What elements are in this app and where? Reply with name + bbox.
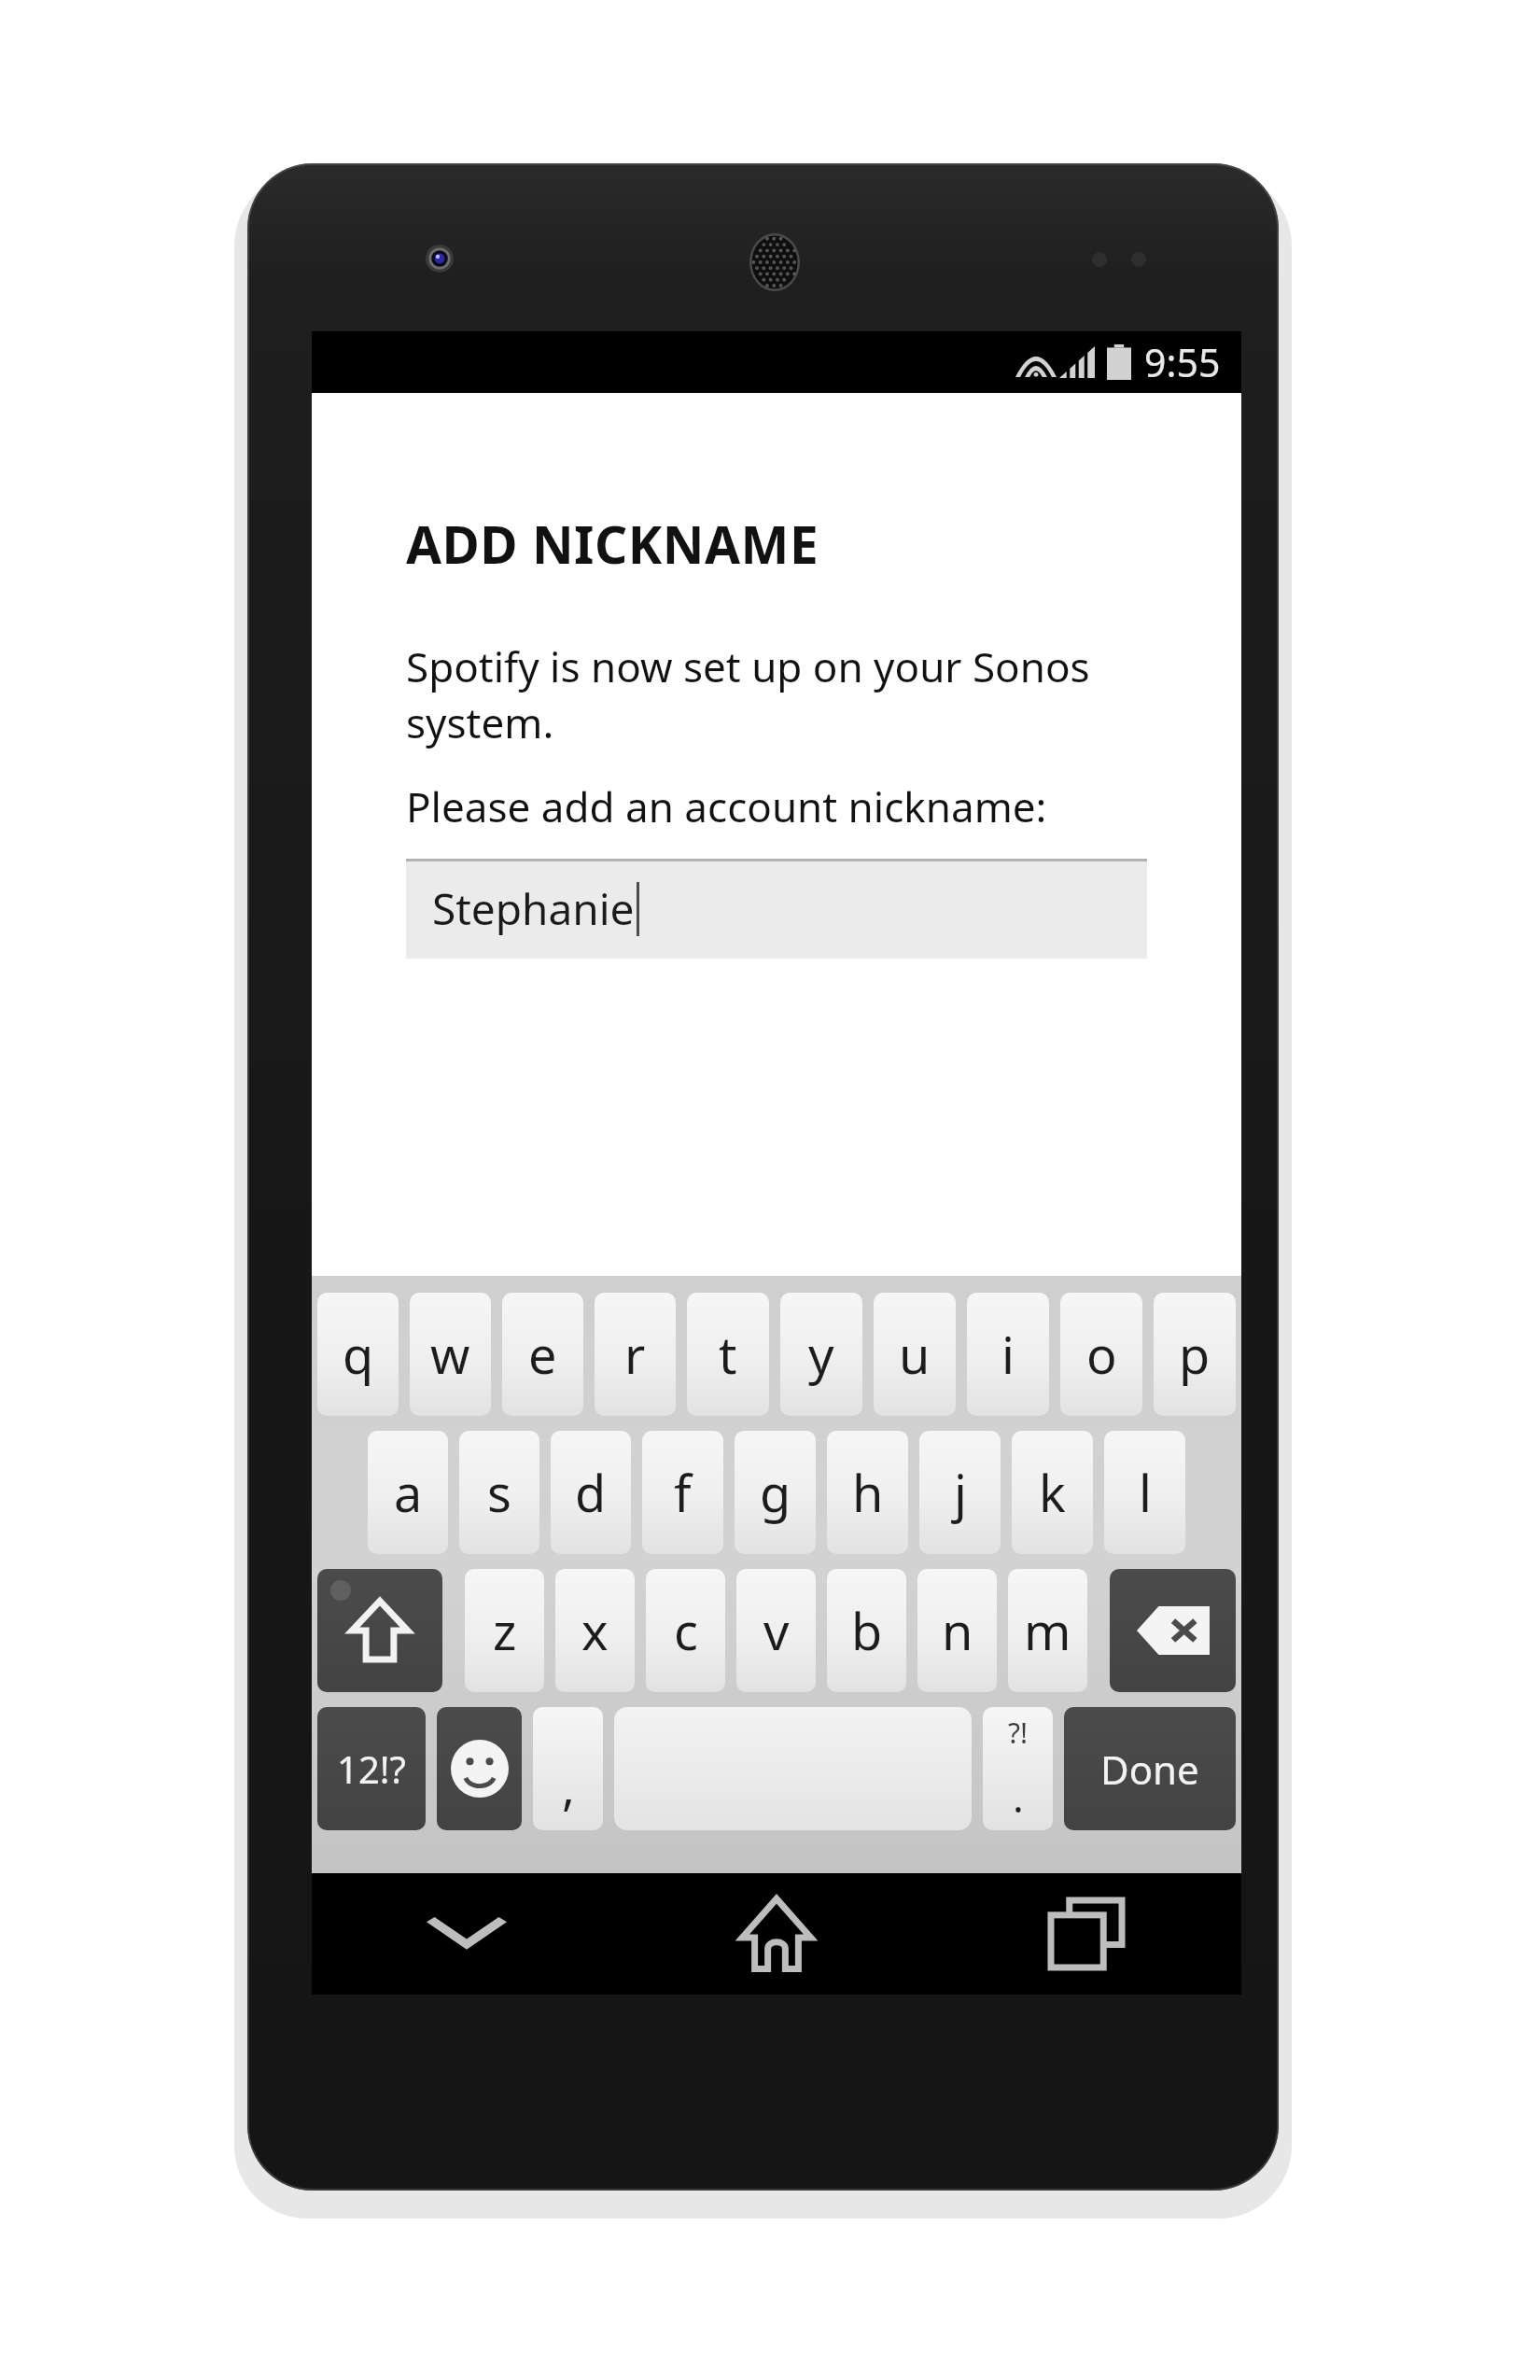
staticText: Done: [1100, 1743, 1199, 1796]
button[interactable]: Hide keyboard: [312, 1873, 622, 1995]
button[interactable]: 12!?: [317, 1707, 426, 1830]
staticText: Spotify is now set up on your Sonos syst…: [406, 638, 1147, 750]
button[interactable]: q: [317, 1293, 399, 1416]
staticText: k: [1039, 1458, 1066, 1527]
staticText: v: [763, 1596, 790, 1665]
button[interactable]: r: [595, 1293, 676, 1416]
button[interactable]: u: [874, 1293, 956, 1416]
staticText: r: [624, 1320, 646, 1389]
staticText: f: [674, 1458, 692, 1527]
staticText: t: [719, 1320, 737, 1389]
button[interactable]: Emoji: [437, 1707, 522, 1830]
button[interactable]: m: [1008, 1569, 1087, 1692]
button[interactable]: a: [368, 1431, 448, 1554]
button[interactable]: x: [555, 1569, 635, 1692]
staticText: .: [1013, 1769, 1024, 1825]
staticText: m: [1024, 1596, 1071, 1665]
staticText: b: [851, 1596, 883, 1665]
button[interactable]: k: [1012, 1431, 1093, 1554]
button[interactable]: Shift: [317, 1569, 442, 1692]
button[interactable]: t: [687, 1293, 769, 1416]
button[interactable]: o: [1060, 1293, 1142, 1416]
staticText: Stephanie: [432, 879, 635, 938]
staticText: ,: [562, 1753, 575, 1819]
button[interactable]: h: [827, 1431, 908, 1554]
staticText: 12!?: [337, 1743, 406, 1794]
staticText: u: [899, 1320, 931, 1389]
button[interactable]: z: [465, 1569, 544, 1692]
button[interactable]: i: [967, 1293, 1049, 1416]
staticText: a: [394, 1458, 423, 1527]
button[interactable]: Space: [614, 1707, 972, 1830]
staticText: s: [487, 1458, 511, 1527]
button[interactable]: v: [736, 1569, 816, 1692]
staticText: 9:55: [1144, 336, 1221, 388]
button[interactable]: l: [1104, 1431, 1185, 1554]
staticText: i: [1001, 1320, 1015, 1389]
staticText: e: [528, 1320, 557, 1389]
staticText: j: [954, 1458, 967, 1527]
button[interactable]: Stephanie: [406, 859, 1147, 959]
staticText: y: [808, 1320, 834, 1389]
button[interactable]: e: [502, 1293, 583, 1416]
button[interactable]: n: [917, 1569, 997, 1692]
button[interactable]: w: [410, 1293, 491, 1416]
staticText: q: [343, 1320, 374, 1389]
button[interactable]: s: [459, 1431, 539, 1554]
staticText: ?!: [1008, 1714, 1029, 1752]
button[interactable]: p: [1154, 1293, 1236, 1416]
button[interactable]: Home: [622, 1873, 931, 1995]
staticText: o: [1086, 1320, 1117, 1389]
staticText: w: [430, 1320, 470, 1389]
button[interactable]: j: [919, 1431, 1001, 1554]
button[interactable]: g: [735, 1431, 816, 1554]
button[interactable]: ?!: [983, 1707, 1053, 1830]
staticText: g: [760, 1458, 791, 1527]
staticText: n: [942, 1596, 973, 1665]
staticText: c: [674, 1596, 698, 1665]
staticText: p: [1179, 1320, 1211, 1389]
button[interactable]: Recents: [931, 1873, 1241, 1995]
button[interactable]: c: [646, 1569, 725, 1692]
staticText: x: [581, 1596, 609, 1665]
button[interactable]: b: [827, 1569, 906, 1692]
staticText: ADD NICKNAME: [406, 509, 819, 579]
staticText: z: [493, 1596, 517, 1665]
button[interactable]: y: [780, 1293, 862, 1416]
staticText: d: [575, 1458, 607, 1527]
button[interactable]: Done: [1064, 1707, 1236, 1830]
button[interactable]: ,: [533, 1707, 603, 1830]
button[interactable]: f: [642, 1431, 723, 1554]
button[interactable]: Backspace: [1110, 1569, 1236, 1692]
staticText: h: [852, 1458, 884, 1527]
button[interactable]: d: [551, 1431, 631, 1554]
staticText: l: [1139, 1458, 1152, 1527]
staticText: Please add an account nickname:: [406, 778, 1047, 834]
